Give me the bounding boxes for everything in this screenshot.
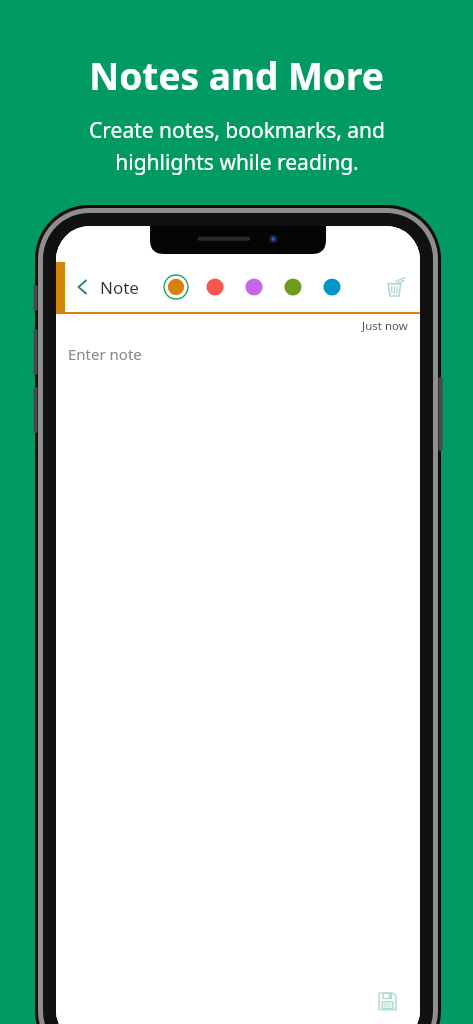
staticText: Just now bbox=[362, 318, 408, 334]
button[interactable]: Save note bbox=[370, 984, 404, 1018]
button[interactable]: Note bbox=[100, 276, 139, 299]
button[interactable]: Colour swatch bbox=[319, 274, 345, 300]
button[interactable]: Back bbox=[70, 274, 96, 300]
button[interactable]: Enter note bbox=[68, 344, 420, 364]
button[interactable]: Colour swatch bbox=[241, 274, 267, 300]
staticText: Enter note bbox=[68, 344, 142, 364]
staticText: highlights while reading. bbox=[115, 148, 359, 177]
staticText: Notes and More bbox=[89, 50, 384, 100]
staticText: Create notes, bookmarks, and bbox=[89, 116, 385, 145]
button[interactable]: Colour swatch bbox=[202, 274, 228, 300]
button[interactable]: Colour swatch bbox=[280, 274, 306, 300]
button[interactable]: Delete note bbox=[378, 270, 412, 304]
button[interactable]: Colour swatch bbox=[163, 274, 189, 300]
